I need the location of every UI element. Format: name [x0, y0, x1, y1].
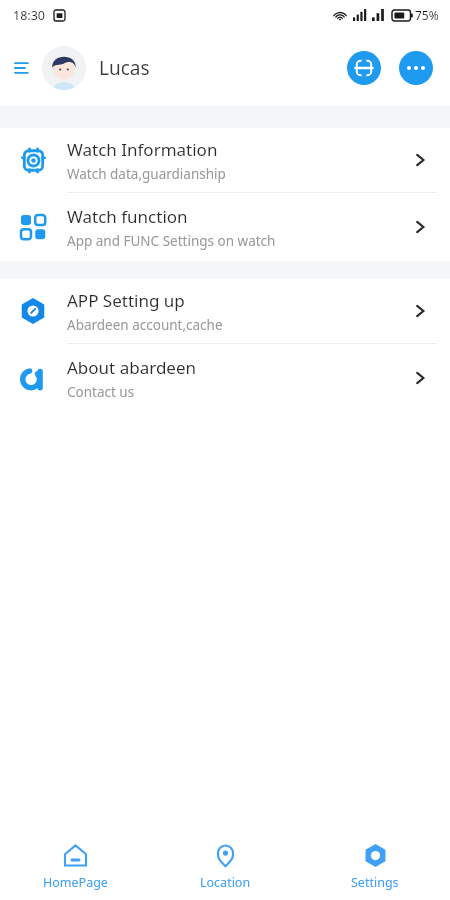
button[interactable]: Profile avatar	[42, 46, 86, 90]
staticText: 75%	[415, 7, 439, 23]
staticText: Watch data,guardianship	[67, 165, 226, 183]
staticText: APP Setting up	[67, 289, 185, 312]
staticText: About abardeen	[67, 356, 197, 379]
button[interactable]: Menu	[8, 53, 38, 83]
staticText: Lucas	[99, 55, 150, 81]
staticText: App and FUNC Settings on watch	[67, 232, 276, 250]
staticText: 18:30	[13, 7, 45, 24]
button[interactable]: About abardeen	[0, 344, 450, 412]
staticText: Watch function	[67, 205, 188, 228]
button[interactable]: HomePage	[0, 832, 150, 900]
button[interactable]: Location	[150, 832, 300, 900]
button[interactable]: More options	[399, 51, 433, 85]
button[interactable]: Watch Information	[0, 128, 450, 193]
button[interactable]: Settings	[300, 832, 450, 900]
staticText: Abardeen account,cache	[67, 316, 223, 334]
staticText: Contact us	[67, 383, 135, 401]
button[interactable]: Watch function	[0, 193, 450, 261]
staticText: Watch Information	[67, 138, 218, 161]
button[interactable]: APP Setting up	[0, 279, 450, 344]
staticText: HomePage	[43, 874, 108, 891]
staticText: Location	[200, 874, 251, 891]
staticText: Settings	[351, 874, 399, 891]
button[interactable]: Scan	[347, 51, 381, 85]
